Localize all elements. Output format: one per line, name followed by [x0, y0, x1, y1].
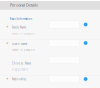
staticText: Basic Information: [9, 17, 32, 21]
button[interactable]: *: [0, 73, 100, 88]
staticText: Name in passport: [12, 48, 35, 52]
staticText: Given Name: [12, 42, 28, 46]
staticText: *: [6, 76, 8, 82]
staticText: Personal Details: [10, 2, 38, 8]
staticText: Chinese Name: [12, 62, 32, 65]
staticText: *: [6, 25, 8, 30]
button[interactable]: *: [0, 21, 100, 37]
staticText: Family Name: [12, 26, 27, 29]
staticText: Name in passport: [12, 32, 35, 35]
button[interactable]: *: [0, 38, 100, 54]
staticText: *: [6, 41, 8, 46]
staticText: Nationality: [12, 77, 26, 81]
staticText: If applicable: [12, 68, 29, 71]
button[interactable]: Chinese Name: [0, 57, 100, 73]
